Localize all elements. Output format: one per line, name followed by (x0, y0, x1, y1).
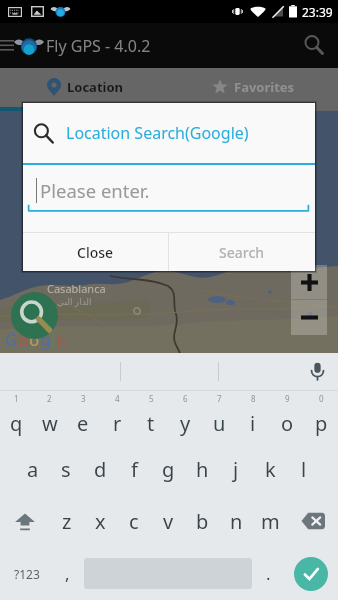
button[interactable]: 0 (304, 391, 338, 443)
button[interactable]: 5 (134, 391, 168, 443)
staticText: v (163, 508, 174, 535)
button[interactable]: l (287, 443, 321, 495)
staticText: s (61, 456, 71, 483)
staticText: a (27, 456, 39, 483)
button[interactable]: Location (0, 68, 169, 106)
button[interactable]: b (185, 495, 219, 547)
button[interactable]: ?123 (0, 547, 53, 600)
staticText: j (233, 456, 239, 483)
staticText: y (180, 410, 191, 437)
button[interactable]: g (151, 443, 185, 495)
button[interactable]: k (253, 443, 287, 495)
button[interactable]: s (49, 443, 83, 495)
staticText: o (29, 328, 40, 351)
staticText: x (95, 508, 106, 535)
staticText: Location Search(Google) (66, 122, 249, 144)
button[interactable]: f (117, 443, 151, 495)
staticText: الدار البي (57, 295, 92, 307)
staticText: p (315, 410, 328, 437)
staticText: 2 (47, 393, 52, 404)
staticText: 9 (285, 393, 290, 404)
button[interactable]: Zoom in (291, 265, 327, 299)
staticText: g (40, 328, 51, 351)
button[interactable]: m (253, 495, 287, 547)
button[interactable]: Backspace (287, 495, 338, 547)
button[interactable]: 2 (33, 391, 66, 443)
staticText: Favorites (234, 78, 295, 96)
staticText: t (147, 410, 155, 437)
button[interactable]: Shift (0, 495, 50, 547)
button[interactable]: Enter (283, 547, 338, 600)
staticText: . (266, 562, 271, 585)
staticText: n (230, 508, 243, 535)
staticText: ?123 (14, 566, 40, 582)
button[interactable]: Voice input (296, 353, 338, 390)
staticText: k (265, 456, 276, 483)
button[interactable]: a (16, 443, 49, 495)
button[interactable]: Favorites (169, 68, 338, 106)
staticText: h (196, 456, 209, 483)
staticText: e (56, 328, 66, 351)
staticText: 1 (14, 393, 19, 404)
staticText: o (18, 328, 29, 351)
staticText: u (213, 410, 226, 437)
button[interactable]: 6 (168, 391, 202, 443)
staticText: d (94, 456, 107, 483)
button[interactable]: Search (290, 23, 338, 68)
button[interactable]: 8 (236, 391, 270, 443)
staticText: f (131, 456, 138, 483)
staticText: G (5, 328, 18, 351)
button[interactable]: Menu (2, 23, 16, 68)
button[interactable]: Close (23, 233, 168, 271)
button[interactable]: , (53, 547, 82, 600)
button[interactable]: c (117, 495, 151, 547)
staticText: r (113, 410, 122, 437)
staticText: 5 (149, 393, 154, 404)
button[interactable]: d (83, 443, 117, 495)
button[interactable]: Zoom out (291, 300, 327, 335)
button[interactable]: n (219, 495, 253, 547)
staticText: l (51, 328, 56, 351)
staticText: w (42, 410, 58, 437)
staticText: l (301, 456, 307, 483)
staticText: Close (77, 243, 114, 262)
staticText: m (261, 508, 280, 535)
staticText: Casablanca (47, 281, 106, 296)
button[interactable]: 4 (100, 391, 134, 443)
button[interactable]: j (219, 443, 253, 495)
staticText: 3 (81, 393, 86, 404)
staticText: , (65, 562, 70, 585)
staticText: c (129, 508, 139, 535)
staticText: 23:39 (302, 4, 333, 20)
button[interactable]: h (185, 443, 219, 495)
button[interactable]: x (83, 495, 117, 547)
staticText: 4 (115, 393, 120, 404)
staticText: g (162, 456, 175, 483)
button[interactable]: v (151, 495, 185, 547)
staticText: i (250, 410, 256, 437)
staticText: 8 (251, 393, 256, 404)
button[interactable]: 3 (66, 391, 100, 443)
staticText: q (10, 410, 23, 437)
button[interactable]: z (50, 495, 83, 547)
button[interactable]: 1 (0, 391, 33, 443)
staticText: 0 (319, 393, 324, 404)
staticText: Fly GPS - 4.0.2 (46, 35, 151, 57)
staticText: Location (67, 78, 123, 96)
button[interactable]: . (254, 547, 283, 600)
button[interactable]: Search (169, 233, 315, 271)
button[interactable]: Search location (11, 292, 58, 339)
staticText: b (196, 508, 209, 535)
button[interactable]: 7 (202, 391, 236, 443)
staticText: o (281, 410, 294, 437)
staticText: 7 (217, 393, 222, 404)
staticText: 6 (183, 393, 188, 404)
staticText: e (77, 410, 89, 437)
staticText: Please enter. (40, 178, 150, 203)
staticText: Search (219, 243, 265, 262)
staticText: z (62, 508, 72, 535)
button[interactable]: 9 (270, 391, 304, 443)
